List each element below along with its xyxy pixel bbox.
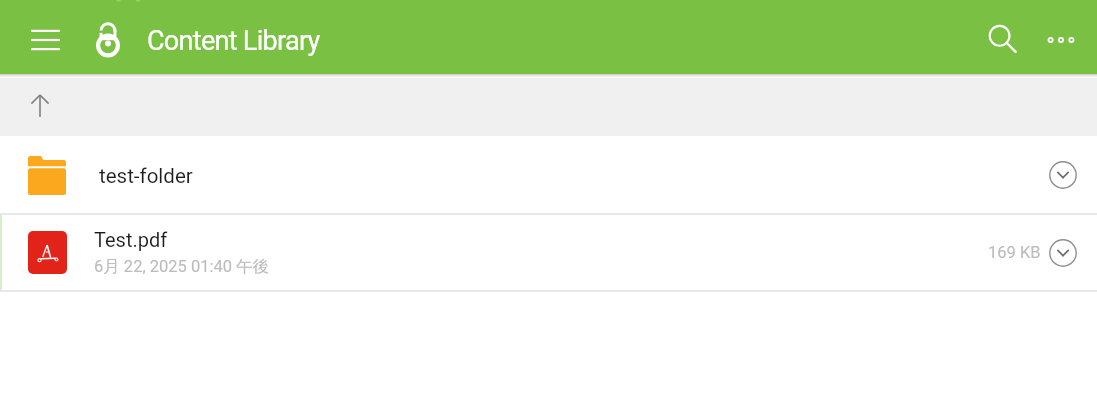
button[interactable]: More options [1039, 18, 1083, 62]
button[interactable]: Show actions [1046, 236, 1080, 270]
button[interactable]: Up one level [16, 82, 64, 130]
button[interactable]: Open navigation menu [17, 12, 73, 68]
button[interactable]: Test.pdf [0, 215, 1097, 290]
button[interactable]: Show actions [1046, 158, 1080, 192]
staticText: test-folder [99, 164, 193, 188]
staticText: Test.pdf [94, 228, 168, 251]
button[interactable]: test-folder [0, 136, 1097, 213]
staticText: Content Library [147, 25, 320, 57]
staticText: 169 KB [988, 243, 1041, 262]
button[interactable]: Search [978, 14, 1028, 64]
staticText: 6月 22, 2025 01:40 午後 [94, 256, 270, 277]
